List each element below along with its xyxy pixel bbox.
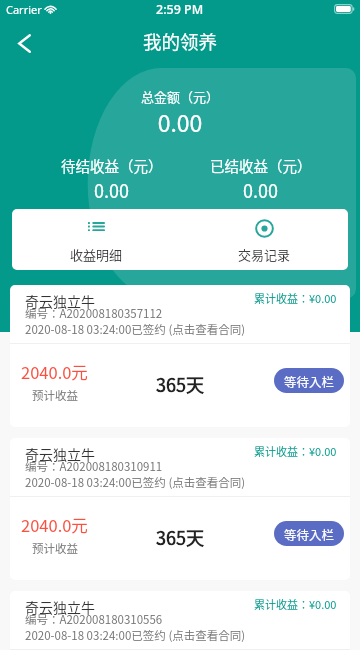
button[interactable]: 奇云独立牛	[10, 438, 350, 580]
staticText: 2020-08-18 03:24:00已签约 (点击查看合同)	[25, 321, 246, 338]
staticText: 预计收益	[32, 540, 78, 557]
staticText: 已结收益（元）	[210, 155, 312, 176]
staticText: 2040.0元	[21, 513, 88, 537]
staticText: 奇云独立牛	[25, 444, 95, 464]
button[interactable]: Back	[2, 21, 46, 65]
button[interactable]: 收益明细	[12, 209, 180, 270]
button[interactable]: 奇云独立牛	[10, 285, 350, 427]
staticText: 编号：A202008180357112	[25, 305, 163, 322]
staticText: 0.00	[94, 177, 129, 203]
staticText: 累计收益：¥0.00	[254, 443, 337, 459]
staticText: 编号：A202008180310556	[25, 611, 163, 628]
staticText: 我的领养	[143, 28, 218, 55]
staticText: 总金额（元）	[0, 87, 360, 106]
staticText: 2040.0元	[21, 360, 88, 384]
staticText: 累计收益：¥0.00	[254, 290, 337, 306]
staticText: 0.00	[243, 177, 278, 203]
staticText: 交易记录	[238, 245, 291, 264]
staticText: 365天	[156, 371, 204, 397]
staticText: 等待入栏	[284, 372, 335, 390]
staticText: Carrier	[6, 2, 42, 17]
staticText: 奇云独立牛	[25, 597, 95, 617]
button[interactable]: 交易记录	[180, 209, 348, 270]
staticText: 奇云独立牛	[25, 291, 95, 311]
staticText: 等待入栏	[284, 525, 335, 543]
staticText: 2020-08-18 03:24:00已签约 (点击查看合同)	[25, 627, 246, 644]
button[interactable]: 奇云独立牛	[10, 591, 350, 650]
staticText: 2:59 PM	[156, 1, 204, 18]
staticText: 收益明细	[70, 245, 123, 264]
button[interactable]: 等待入栏	[274, 521, 344, 546]
staticText: 预计收益	[32, 387, 78, 404]
button[interactable]: 等待入栏	[274, 368, 344, 393]
staticText: 365天	[156, 524, 204, 550]
staticText: 0.00	[0, 105, 360, 138]
staticText: 编号：A202008180310911	[25, 458, 163, 475]
staticText: 累计收益：¥0.00	[254, 596, 337, 612]
staticText: 2020-08-18 03:24:00已签约 (点击查看合同)	[25, 474, 246, 491]
staticText: 待结收益（元）	[61, 155, 163, 176]
